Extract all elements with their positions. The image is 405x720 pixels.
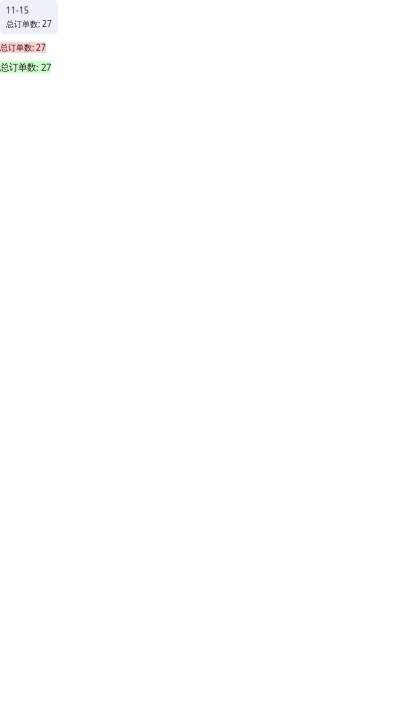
staticText: 总订单数: 27 [0, 61, 51, 73]
staticText: 总订单数: 27 [6, 19, 52, 29]
staticText: 11-15 [6, 5, 29, 16]
staticText: 总订单数: 27 [0, 42, 46, 53]
